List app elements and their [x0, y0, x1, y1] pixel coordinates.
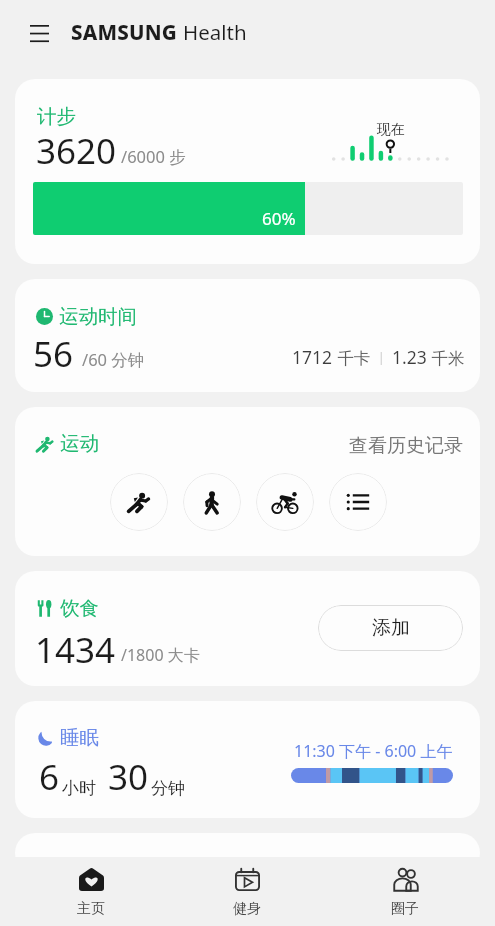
staticText: 添加: [372, 616, 410, 640]
staticText: |: [371, 348, 392, 366]
button[interactable]: Cycling: [256, 473, 314, 531]
staticText: 分钟: [151, 778, 185, 799]
staticText: 运动: [60, 431, 99, 456]
staticText: 56: [33, 330, 74, 378]
staticText: 计步: [37, 104, 76, 129]
staticText: 30: [108, 753, 149, 801]
staticText: 健身: [233, 900, 261, 918]
button[interactable]: 查看历史记录: [349, 434, 463, 458]
staticText: SAMSUNG: [71, 18, 177, 46]
staticText: 千卡: [333, 346, 371, 369]
staticText: 睡眠: [60, 725, 99, 750]
staticText: 主页: [77, 900, 105, 918]
staticText: /60 分钟: [82, 348, 145, 371]
staticText: 6: [39, 753, 60, 801]
button[interactable]: More workouts: [329, 473, 387, 531]
staticText: 60%: [262, 207, 296, 230]
button[interactable]: 主页: [51, 857, 131, 926]
staticText: /1800 大卡: [121, 644, 200, 666]
staticText: 千米: [427, 346, 465, 369]
button[interactable]: Menu: [22, 16, 56, 50]
staticText: /6000 步: [121, 145, 186, 168]
staticText: 3620: [36, 127, 117, 175]
staticText: 1.23: [392, 345, 427, 369]
staticText: 1712: [292, 345, 333, 369]
staticText: 圈子: [391, 900, 419, 918]
staticText: 运动时间: [59, 304, 137, 329]
button[interactable]: 圈子: [365, 857, 445, 926]
button[interactable]: 添加: [318, 605, 463, 651]
staticText: 现在: [377, 121, 405, 139]
button[interactable]: 健身: [207, 857, 287, 926]
staticText: Health: [183, 18, 247, 46]
staticText: 饮食: [60, 596, 99, 621]
staticText: 1434: [35, 626, 116, 674]
staticText: 11:30 下午 - 6:00 上午: [294, 740, 453, 762]
button[interactable]: Running: [110, 473, 168, 531]
button[interactable]: Walking: [183, 473, 241, 531]
staticText: 小时: [62, 778, 96, 799]
